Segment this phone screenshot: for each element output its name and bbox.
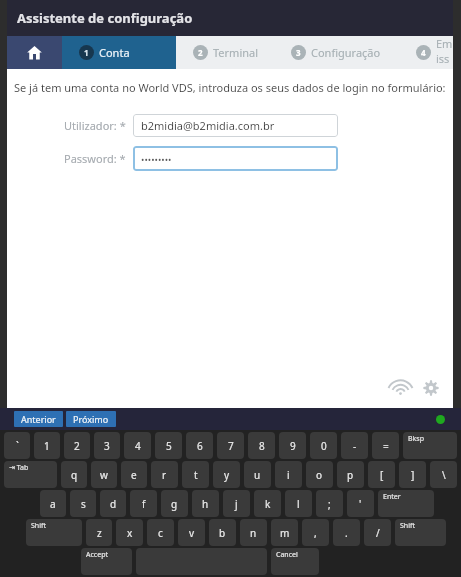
button[interactable]: / [364,519,391,546]
button[interactable]: , [302,519,329,546]
button[interactable]: Início [7,36,62,69]
button[interactable]: d [100,490,126,517]
button[interactable]: u [244,461,271,488]
button[interactable]: Shift [26,519,82,546]
button[interactable]: Definições [420,377,442,399]
button[interactable]: 9 [279,432,306,459]
staticText: b [219,526,226,540]
button[interactable]: b2midia@b2midia.com.br [133,114,338,137]
button[interactable]: Wi-Fi [389,377,411,399]
button[interactable]: Anterior [14,411,63,427]
staticText: d [110,497,117,511]
button[interactable]: 5 [155,432,182,459]
button[interactable]: c [147,519,174,546]
button[interactable]: . [333,519,360,546]
staticText: ] [411,468,415,482]
staticText: h [202,497,209,511]
button[interactable]: f [130,490,157,517]
staticText: w [100,468,108,482]
button[interactable]: g [161,490,188,517]
staticText: 9 [290,439,296,453]
staticText: Cancel [276,550,298,560]
button[interactable]: ; [316,490,343,517]
button[interactable]: ] [399,461,426,488]
button[interactable]: Próximo [66,411,116,427]
button[interactable]: k [254,490,281,517]
button[interactable]: j [223,490,250,517]
button[interactable]: 4 [399,36,453,69]
button[interactable]: 6 [186,432,213,459]
staticText: c [158,526,163,540]
button[interactable]: b [209,519,236,546]
button[interactable]: 1 [34,432,60,459]
staticText: / [376,526,380,540]
button[interactable]: Enter [378,490,434,517]
button[interactable]: z [86,519,112,546]
button[interactable]: t [182,461,209,488]
staticText: Anterior [21,413,56,425]
staticText: Emissão [436,36,453,69]
staticText: Bksp [408,434,424,444]
button[interactable]: 1 [62,36,176,69]
staticText: 8 [259,439,265,453]
button[interactable]: l [285,490,312,517]
staticText: Terminal [213,45,259,60]
button[interactable]: x [116,519,143,546]
button[interactable]: h [192,490,219,517]
button[interactable]: 7 [217,432,244,459]
staticText: Se já tem uma conta no World VDS, introd… [14,80,446,95]
button[interactable]: 2 [176,36,274,69]
button[interactable]: o [306,461,333,488]
button[interactable]: s [70,490,96,517]
button[interactable]: 2 [64,432,90,459]
button[interactable]: ` [4,432,30,459]
staticText: 2 [198,47,203,58]
button[interactable]: 8 [248,432,275,459]
button[interactable]: q [61,461,87,488]
button[interactable]: r [151,461,178,488]
staticText: ` [16,439,19,453]
staticText: y [224,468,230,482]
staticText: 2 [74,439,80,453]
button[interactable]: v [178,519,205,546]
staticText: = [383,439,389,453]
button[interactable]: m [271,519,298,546]
button[interactable]: Accept [81,548,132,575]
staticText: ⇥ Tab [9,463,29,473]
staticText: Conta [99,45,130,60]
button[interactable]: p [337,461,364,488]
button[interactable]: 0 [310,432,337,459]
button[interactable]: 4 [124,432,151,459]
staticText: 0 [321,439,327,453]
button[interactable]: w [91,461,117,488]
button[interactable]: ⇥ Tab [4,461,57,488]
button[interactable]: [ [368,461,395,488]
button[interactable]: \ [430,461,457,488]
button[interactable]: i [275,461,302,488]
button[interactable]: ••••••••• [133,146,338,171]
button[interactable]: 3 [94,432,120,459]
button[interactable]: 3 [274,36,399,69]
button[interactable]: e [121,461,147,488]
staticText: Accept [86,550,108,560]
staticText: q [71,468,78,482]
button[interactable]: Cancel [271,548,319,575]
staticText: x [127,526,133,540]
staticText: p [347,468,354,482]
button[interactable]: a [40,490,66,517]
button[interactable]: ' [347,490,374,517]
button[interactable]: = [372,432,399,459]
button[interactable]: Bksp [403,432,457,459]
staticText: [ [380,468,384,482]
button[interactable]: Shift [395,519,446,546]
staticText: i [287,468,290,482]
button[interactable]: y [213,461,240,488]
staticText: u [254,468,261,482]
button[interactable]: - [341,432,368,459]
button[interactable]: n [240,519,267,546]
staticText: f [142,497,146,511]
staticText: 4 [421,47,426,58]
staticText: - [353,439,357,453]
staticText: Utilizador: * [64,118,126,133]
